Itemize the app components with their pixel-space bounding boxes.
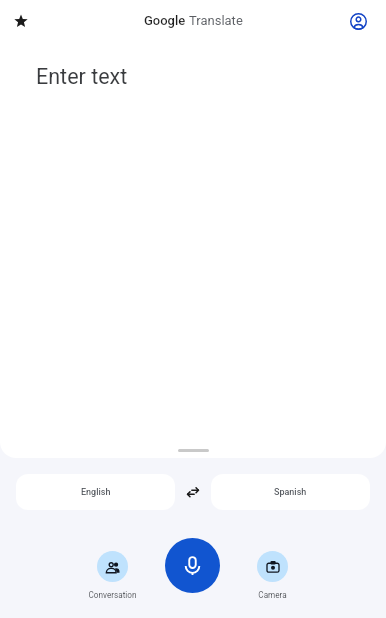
staticText: Translate <box>189 13 243 28</box>
staticText: Spanish <box>274 487 307 498</box>
button[interactable]: Camera <box>242 546 302 606</box>
button[interactable]: English <box>16 474 175 510</box>
button[interactable]: Conversation <box>82 546 142 606</box>
button[interactable]: Swap languages <box>175 474 211 510</box>
staticText: Camera <box>258 590 287 600</box>
staticText: Conversation <box>88 590 137 600</box>
staticText: Enter text <box>36 64 128 89</box>
staticText: Google <box>144 13 186 28</box>
button[interactable]: Spanish <box>211 474 370 510</box>
button[interactable]: Speak <box>165 538 220 593</box>
button[interactable]: Account <box>346 9 370 33</box>
staticText: English <box>81 487 111 498</box>
button[interactable]: Saved phrases <box>8 8 33 33</box>
